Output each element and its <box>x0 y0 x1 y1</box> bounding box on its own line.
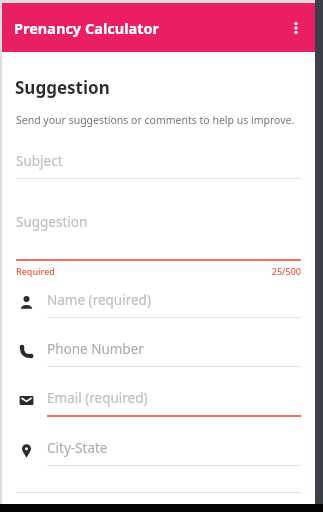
staticText: Phone Number <box>47 340 144 358</box>
staticText: 25/500 <box>271 265 301 277</box>
staticText: City-State <box>47 439 108 457</box>
button[interactable]: Subject <box>2 152 315 179</box>
staticText: Required <box>16 265 55 277</box>
staticText: Subject <box>16 152 63 170</box>
staticText: Email (required) <box>47 389 148 407</box>
staticText: Suggestion <box>16 213 88 231</box>
button[interactable]: Email <box>2 389 315 417</box>
button[interactable]: Suggestion <box>2 213 315 261</box>
button[interactable]: Phone number <box>2 340 315 367</box>
staticText: Prenancy Calculator <box>14 18 159 38</box>
staticText: Name (required) <box>47 291 151 309</box>
staticText: Send your suggestions or comments to hel… <box>16 113 295 127</box>
button[interactable]: Name <box>2 291 315 318</box>
button[interactable]: City and state <box>2 439 315 466</box>
staticText: Suggestion <box>15 76 110 99</box>
button[interactable]: More options <box>282 14 310 42</box>
